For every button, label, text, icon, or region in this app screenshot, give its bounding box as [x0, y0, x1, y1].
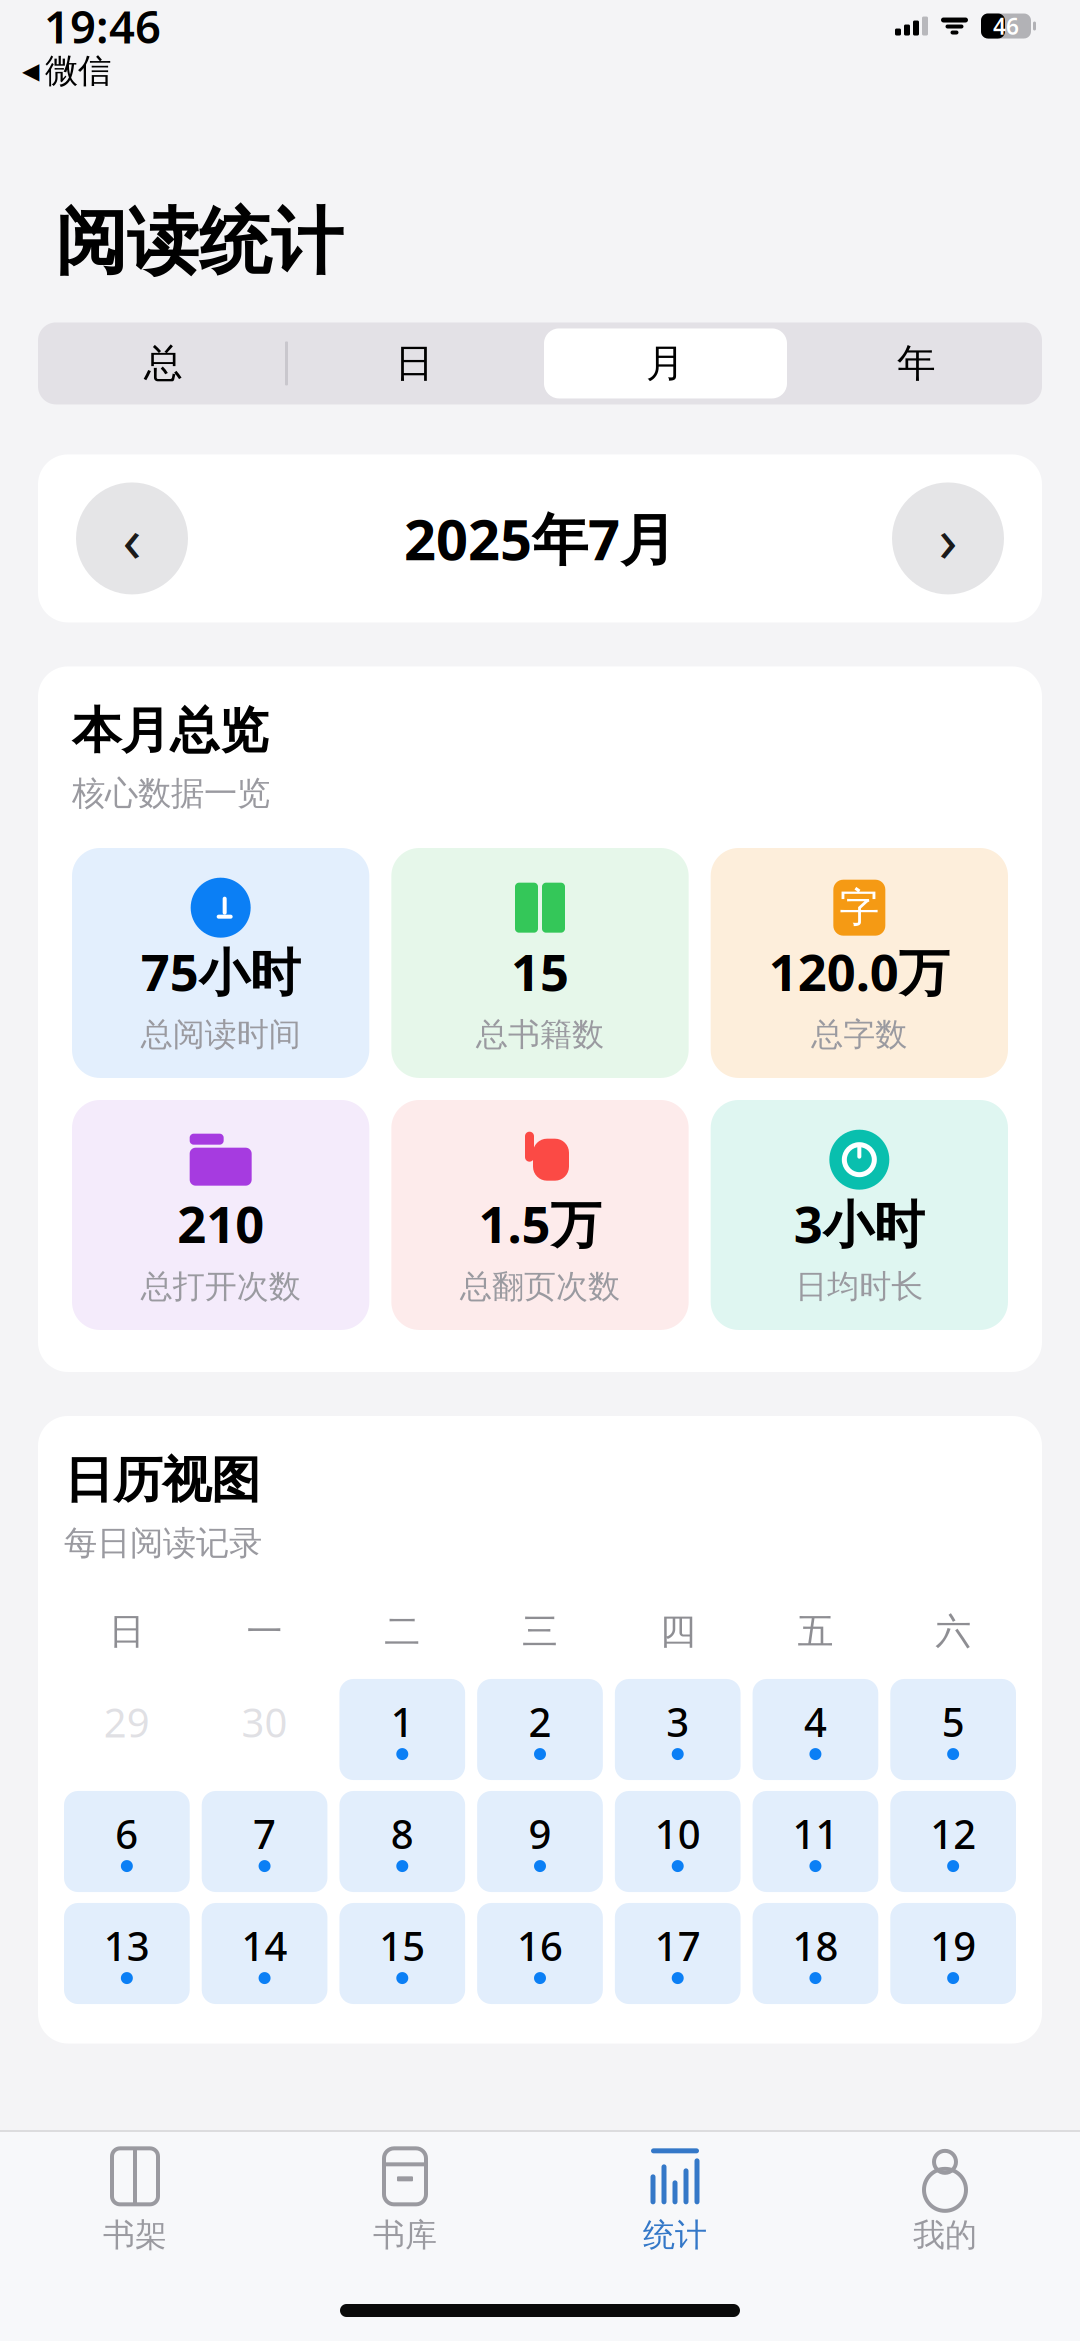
staticText: 3: [666, 1695, 689, 1748]
staticText: 6: [115, 1807, 138, 1860]
staticText: 本月总览: [72, 700, 268, 761]
button[interactable]: 14: [202, 1903, 327, 2003]
staticText: ‹: [122, 498, 141, 579]
staticText: 总: [144, 340, 183, 387]
staticText: 7: [253, 1807, 276, 1860]
staticText: 75小时: [141, 938, 301, 1005]
button[interactable]: 10: [615, 1791, 741, 1891]
staticText: 每日阅读记录: [64, 1523, 262, 1563]
button[interactable]: 19: [890, 1903, 1016, 2003]
button[interactable]: 75小时: [72, 848, 369, 1078]
button[interactable]: 16: [477, 1903, 603, 2003]
button[interactable]: 12: [890, 1791, 1016, 1891]
staticText: 书架: [103, 2215, 167, 2255]
button[interactable]: 统计: [540, 2142, 810, 2260]
button[interactable]: 17: [615, 1903, 741, 2003]
staticText: 字: [839, 883, 879, 932]
button[interactable]: 2: [477, 1679, 603, 1779]
button[interactable]: 日: [289, 322, 540, 404]
staticText: 日历视图: [64, 1450, 260, 1511]
staticText: 29: [104, 1695, 150, 1749]
staticText: 总打开次数: [141, 1267, 301, 1306]
button[interactable]: 9: [477, 1791, 603, 1891]
button[interactable]: 月: [540, 322, 791, 404]
staticText: 二: [384, 1609, 420, 1654]
staticText: 19:46: [44, 0, 161, 56]
staticText: ›: [938, 498, 957, 579]
staticText: 9: [528, 1807, 551, 1860]
button[interactable]: 13: [64, 1903, 190, 2003]
staticText: 14: [242, 1919, 288, 1972]
staticText: 月: [646, 340, 685, 387]
staticText: 微信: [45, 50, 111, 91]
button[interactable]: 4: [753, 1679, 878, 1779]
button[interactable]: 书库: [270, 2142, 540, 2260]
button[interactable]: 1: [339, 1679, 465, 1779]
staticText: 五: [797, 1609, 833, 1654]
staticText: 5: [942, 1695, 965, 1748]
button[interactable]: 11: [753, 1791, 878, 1891]
staticText: 总翻页次数: [460, 1267, 620, 1306]
staticText: 我的: [913, 2215, 977, 2255]
staticText: ◀: [22, 58, 39, 84]
button[interactable]: 210: [72, 1100, 369, 1330]
staticText: 统计: [643, 2215, 707, 2255]
staticText: 12: [930, 1807, 976, 1860]
button[interactable]: 15: [339, 1903, 465, 2003]
staticText: 1.5万: [478, 1190, 601, 1257]
staticText: 17: [655, 1919, 701, 1972]
button[interactable]: 3: [615, 1679, 741, 1779]
staticText: 2025年7月: [404, 501, 676, 576]
button[interactable]: 书架: [0, 2142, 270, 2260]
staticText: 11: [792, 1807, 838, 1860]
staticText: 8: [391, 1807, 414, 1860]
staticText: 总字数: [811, 1015, 907, 1054]
staticText: 核心数据一览: [72, 773, 270, 814]
staticText: 年: [897, 340, 936, 387]
button[interactable]: 下个月: [892, 482, 1004, 594]
staticText: 四: [660, 1609, 696, 1654]
staticText: 日: [395, 340, 434, 387]
staticText: 13: [104, 1919, 150, 1972]
staticText: 15: [379, 1919, 425, 1972]
button[interactable]: 29: [64, 1679, 190, 1779]
staticText: 书库: [373, 2215, 437, 2255]
staticText: 三: [522, 1609, 558, 1654]
staticText: 日均时长: [795, 1267, 923, 1306]
staticText: 18: [792, 1919, 838, 1972]
staticText: 阅读统计: [55, 198, 343, 286]
staticText: 总阅读时间: [141, 1015, 301, 1054]
button[interactable]: 上个月: [76, 482, 188, 594]
staticText: 10: [655, 1807, 701, 1860]
button[interactable]: 3小时: [711, 1100, 1008, 1330]
staticText: 15: [511, 938, 569, 1005]
button[interactable]: 15: [391, 848, 689, 1078]
button[interactable]: 年: [791, 322, 1042, 404]
staticText: 30: [242, 1695, 288, 1749]
staticText: 1: [391, 1695, 414, 1748]
staticText: 总书籍数: [476, 1015, 604, 1054]
staticText: 2: [528, 1695, 551, 1748]
button[interactable]: 6: [64, 1791, 190, 1891]
button[interactable]: 7: [202, 1791, 327, 1891]
button[interactable]: 1.5万: [391, 1100, 689, 1330]
staticText: 46: [993, 11, 1019, 41]
staticText: 16: [517, 1919, 563, 1972]
staticText: 4: [804, 1695, 827, 1748]
staticText: 一: [247, 1609, 283, 1654]
button[interactable]: 8: [339, 1791, 465, 1891]
staticText: 3小时: [794, 1190, 925, 1257]
staticText: 120.0万: [769, 938, 950, 1005]
staticText: 210: [177, 1190, 264, 1257]
staticText: 日: [109, 1609, 145, 1654]
button[interactable]: 我的: [810, 2142, 1080, 2260]
button[interactable]: 字: [711, 848, 1008, 1078]
button[interactable]: 30: [202, 1679, 327, 1779]
button[interactable]: 5: [890, 1679, 1016, 1779]
staticText: 六: [935, 1609, 971, 1654]
staticText: 19: [930, 1919, 976, 1972]
button[interactable]: 总: [38, 322, 289, 404]
button[interactable]: ◀: [18, 50, 115, 91]
button[interactable]: 18: [753, 1903, 878, 2003]
